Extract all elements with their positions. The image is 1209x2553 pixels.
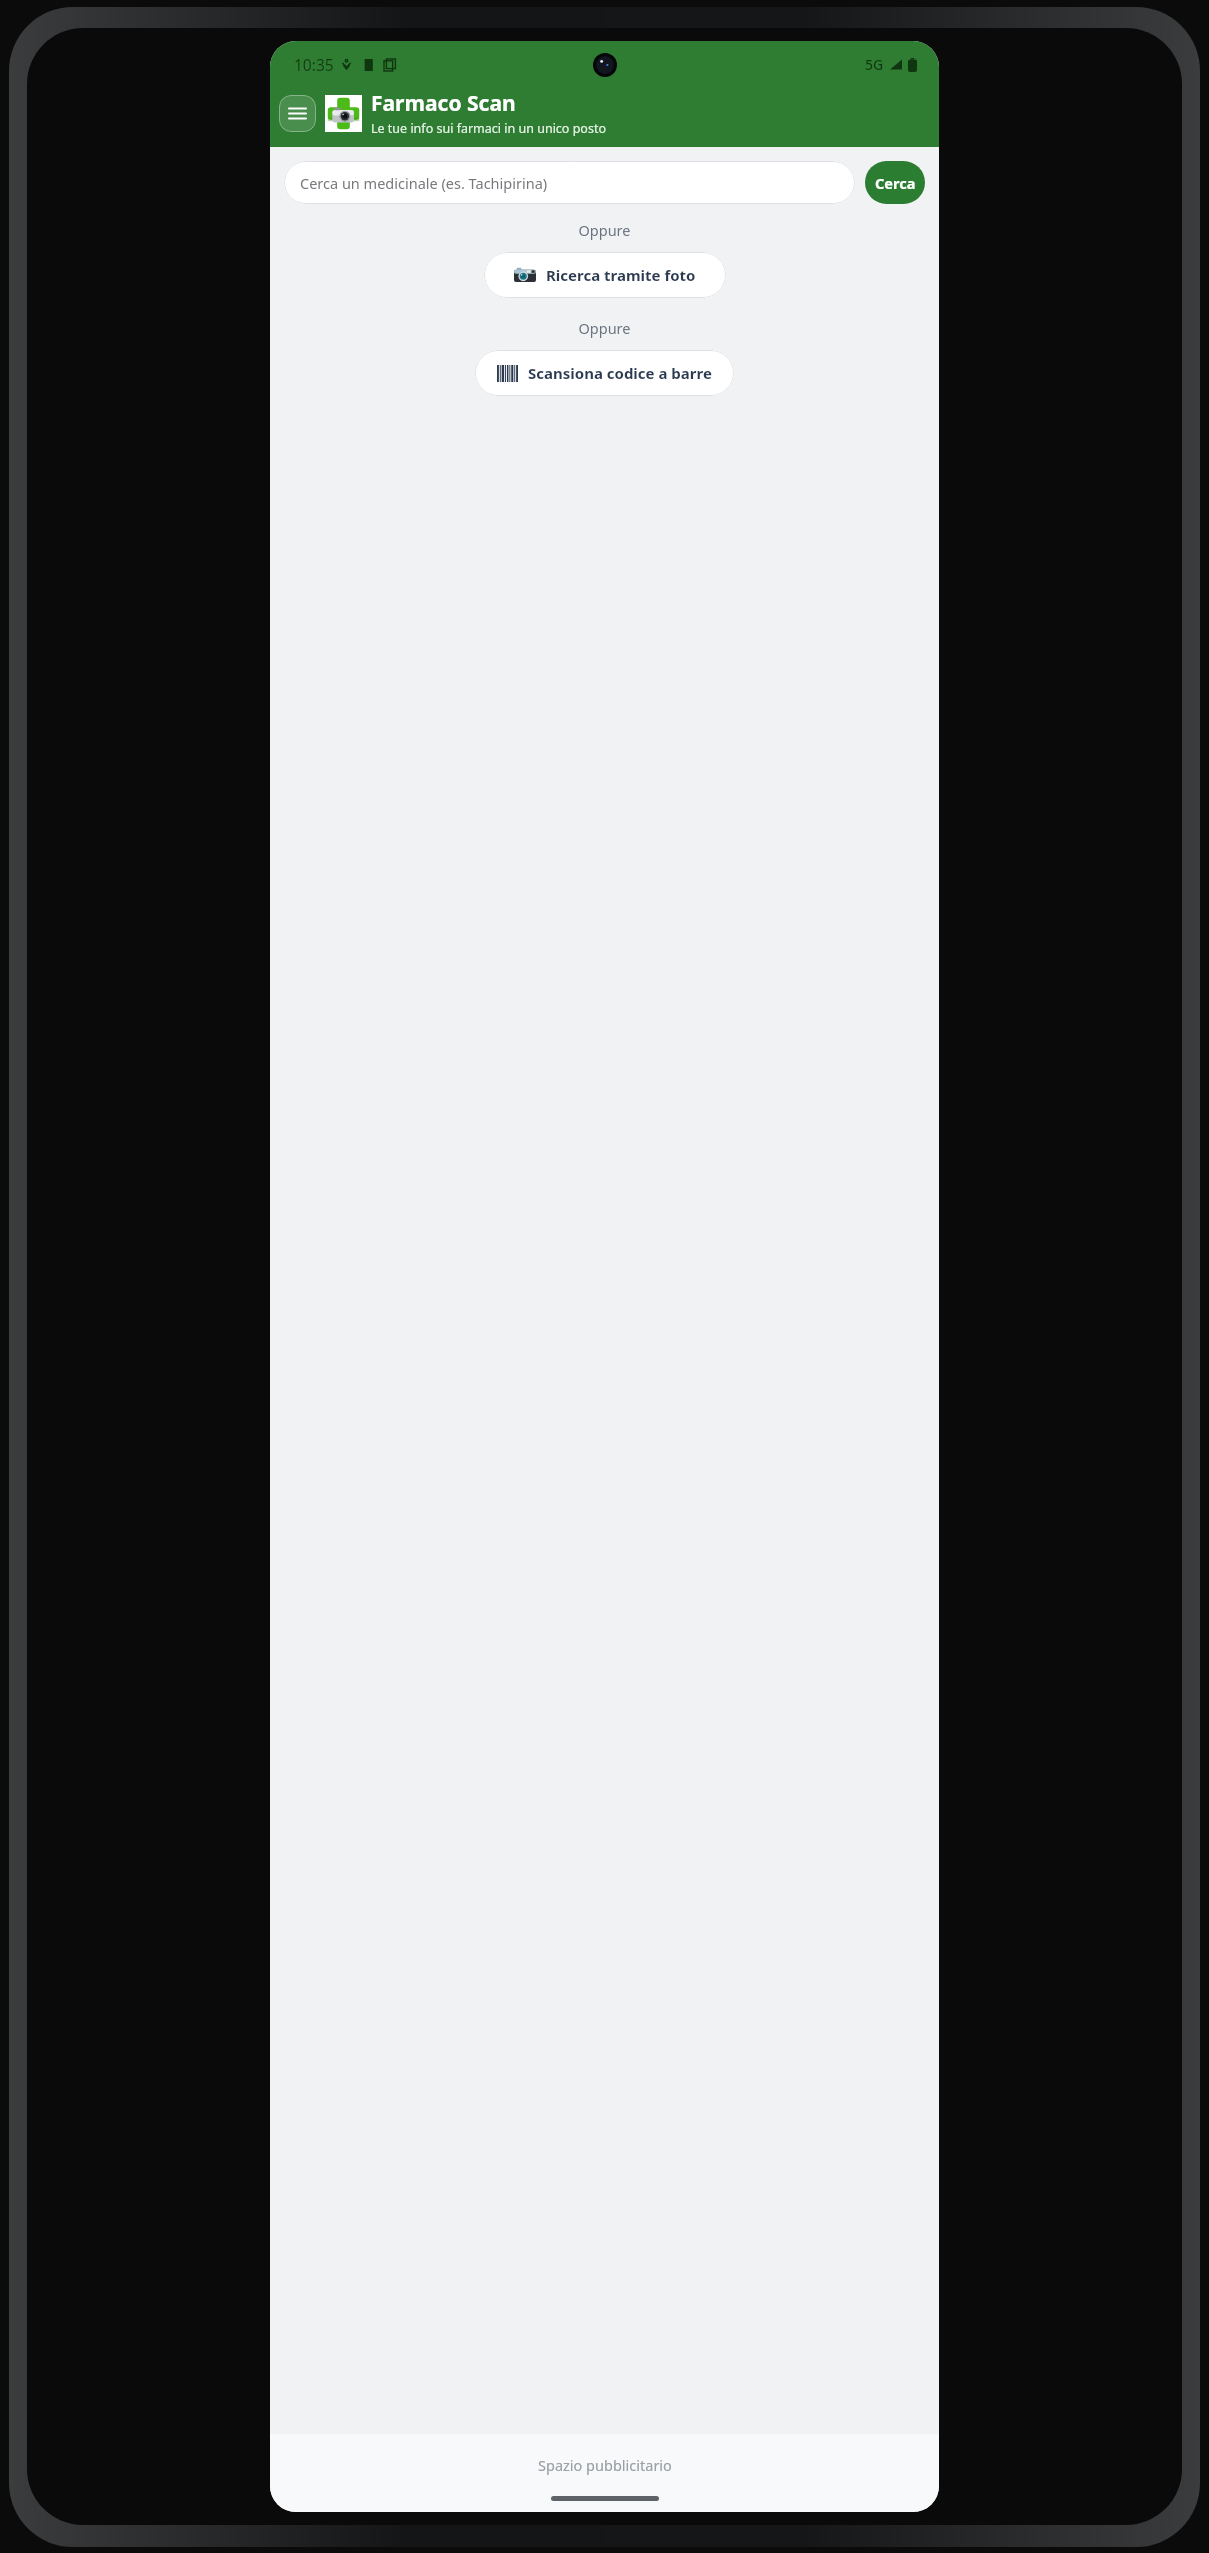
button[interactable]: Cerca un medicinale (es. Tachipirina) — [284, 161, 855, 204]
button[interactable]: Ricerca tramite foto — [484, 252, 726, 298]
staticText: Spazio pubblicitario — [538, 2455, 672, 2475]
staticText: 5G — [865, 55, 884, 74]
staticText: Scansiona codice a barre — [528, 363, 712, 383]
staticText: Oppure — [270, 220, 939, 240]
staticText: Cerca — [875, 173, 916, 193]
staticText: Farmaco Scan — [371, 89, 516, 118]
staticText: Ricerca tramite foto — [546, 265, 696, 285]
staticText: Le tue info sui farmaci in un unico post… — [371, 120, 606, 137]
button[interactable]: Menu — [279, 95, 316, 132]
button[interactable]: Cerca — [865, 161, 925, 204]
button[interactable]: Scansiona codice a barre — [475, 350, 734, 396]
staticText: Oppure — [270, 318, 939, 338]
staticText: Cerca un medicinale (es. Tachipirina) — [300, 173, 548, 193]
staticText: 10:35 — [294, 54, 334, 75]
